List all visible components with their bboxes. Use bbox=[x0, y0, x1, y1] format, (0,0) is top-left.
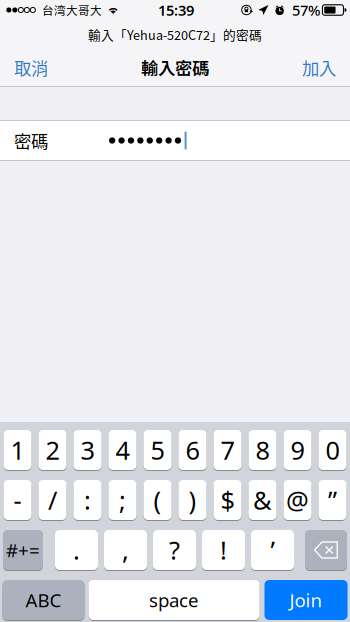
button[interactable]: & bbox=[248, 479, 276, 520]
staticText: ) bbox=[188, 483, 196, 517]
button[interactable]: Delete bbox=[305, 529, 347, 570]
staticText: 加入 bbox=[302, 55, 336, 80]
button[interactable]: ” bbox=[318, 479, 346, 520]
button[interactable]: 4 bbox=[108, 429, 136, 470]
staticText: 台湾大哥大 bbox=[42, 2, 102, 18]
staticText: 6 bbox=[185, 433, 199, 467]
button[interactable]: #+= bbox=[3, 529, 43, 570]
staticText: ABC bbox=[25, 588, 61, 612]
staticText: . bbox=[73, 533, 80, 567]
button[interactable]: 取消 bbox=[0, 47, 62, 86]
button[interactable]: ; bbox=[108, 479, 136, 520]
staticText: 57% bbox=[292, 0, 320, 20]
button[interactable]: space bbox=[88, 579, 259, 620]
staticText: ’ bbox=[270, 533, 274, 567]
staticText: ” bbox=[328, 483, 337, 517]
staticText: 8 bbox=[255, 433, 269, 467]
button[interactable]: 1 bbox=[3, 429, 31, 470]
staticText: #+= bbox=[6, 538, 40, 562]
staticText: : bbox=[84, 483, 91, 517]
button[interactable]: , bbox=[104, 529, 147, 570]
staticText: 5 bbox=[150, 433, 164, 467]
staticText: , bbox=[122, 533, 129, 567]
button[interactable]: ’ bbox=[251, 529, 294, 570]
button[interactable]: 9 bbox=[283, 429, 311, 470]
staticText: $ bbox=[220, 483, 234, 517]
button[interactable]: ! bbox=[202, 529, 245, 570]
staticText: - bbox=[13, 483, 21, 517]
staticText: 輸入「Yehua-520C72」的密碼 bbox=[88, 25, 262, 44]
staticText: 7 bbox=[220, 433, 234, 467]
staticText: @ bbox=[286, 483, 309, 517]
button[interactable]: 3 bbox=[73, 429, 101, 470]
button[interactable]: ) bbox=[178, 479, 206, 520]
staticText: ; bbox=[119, 483, 126, 517]
button[interactable]: ( bbox=[143, 479, 171, 520]
staticText: 0 bbox=[325, 433, 339, 467]
staticText: 3 bbox=[80, 433, 94, 467]
button[interactable]: ? bbox=[153, 529, 196, 570]
staticText: 15:39 bbox=[158, 0, 194, 20]
button[interactable]: @ bbox=[283, 479, 311, 520]
button[interactable]: : bbox=[73, 479, 101, 520]
staticText: 輸入密碼 bbox=[141, 55, 209, 80]
button[interactable]: . bbox=[55, 529, 98, 570]
staticText: ? bbox=[169, 533, 180, 567]
button[interactable]: 7 bbox=[213, 429, 241, 470]
button[interactable]: 加入 bbox=[288, 47, 350, 86]
button[interactable]: 0 bbox=[318, 429, 346, 470]
button[interactable]: 5 bbox=[143, 429, 171, 470]
button[interactable]: 8 bbox=[248, 429, 276, 470]
staticText: ! bbox=[220, 533, 227, 567]
staticText: 密碼 bbox=[14, 128, 48, 153]
staticText: 取消 bbox=[14, 55, 48, 80]
button[interactable]: / bbox=[38, 479, 66, 520]
staticText: & bbox=[253, 483, 272, 517]
button[interactable]: $ bbox=[213, 479, 241, 520]
staticText: 2 bbox=[45, 433, 59, 467]
button[interactable]: ABC bbox=[2, 579, 84, 620]
button[interactable]: Join bbox=[264, 579, 347, 620]
staticText: Join bbox=[289, 588, 322, 612]
staticText: 1 bbox=[10, 433, 24, 467]
button[interactable]: - bbox=[3, 479, 31, 520]
staticText: / bbox=[48, 483, 57, 517]
staticText: ( bbox=[153, 483, 161, 517]
button[interactable]: 6 bbox=[178, 429, 206, 470]
button[interactable]: 2 bbox=[38, 429, 66, 470]
staticText: 9 bbox=[290, 433, 304, 467]
staticText: space bbox=[149, 588, 199, 612]
staticText: 4 bbox=[115, 433, 129, 467]
